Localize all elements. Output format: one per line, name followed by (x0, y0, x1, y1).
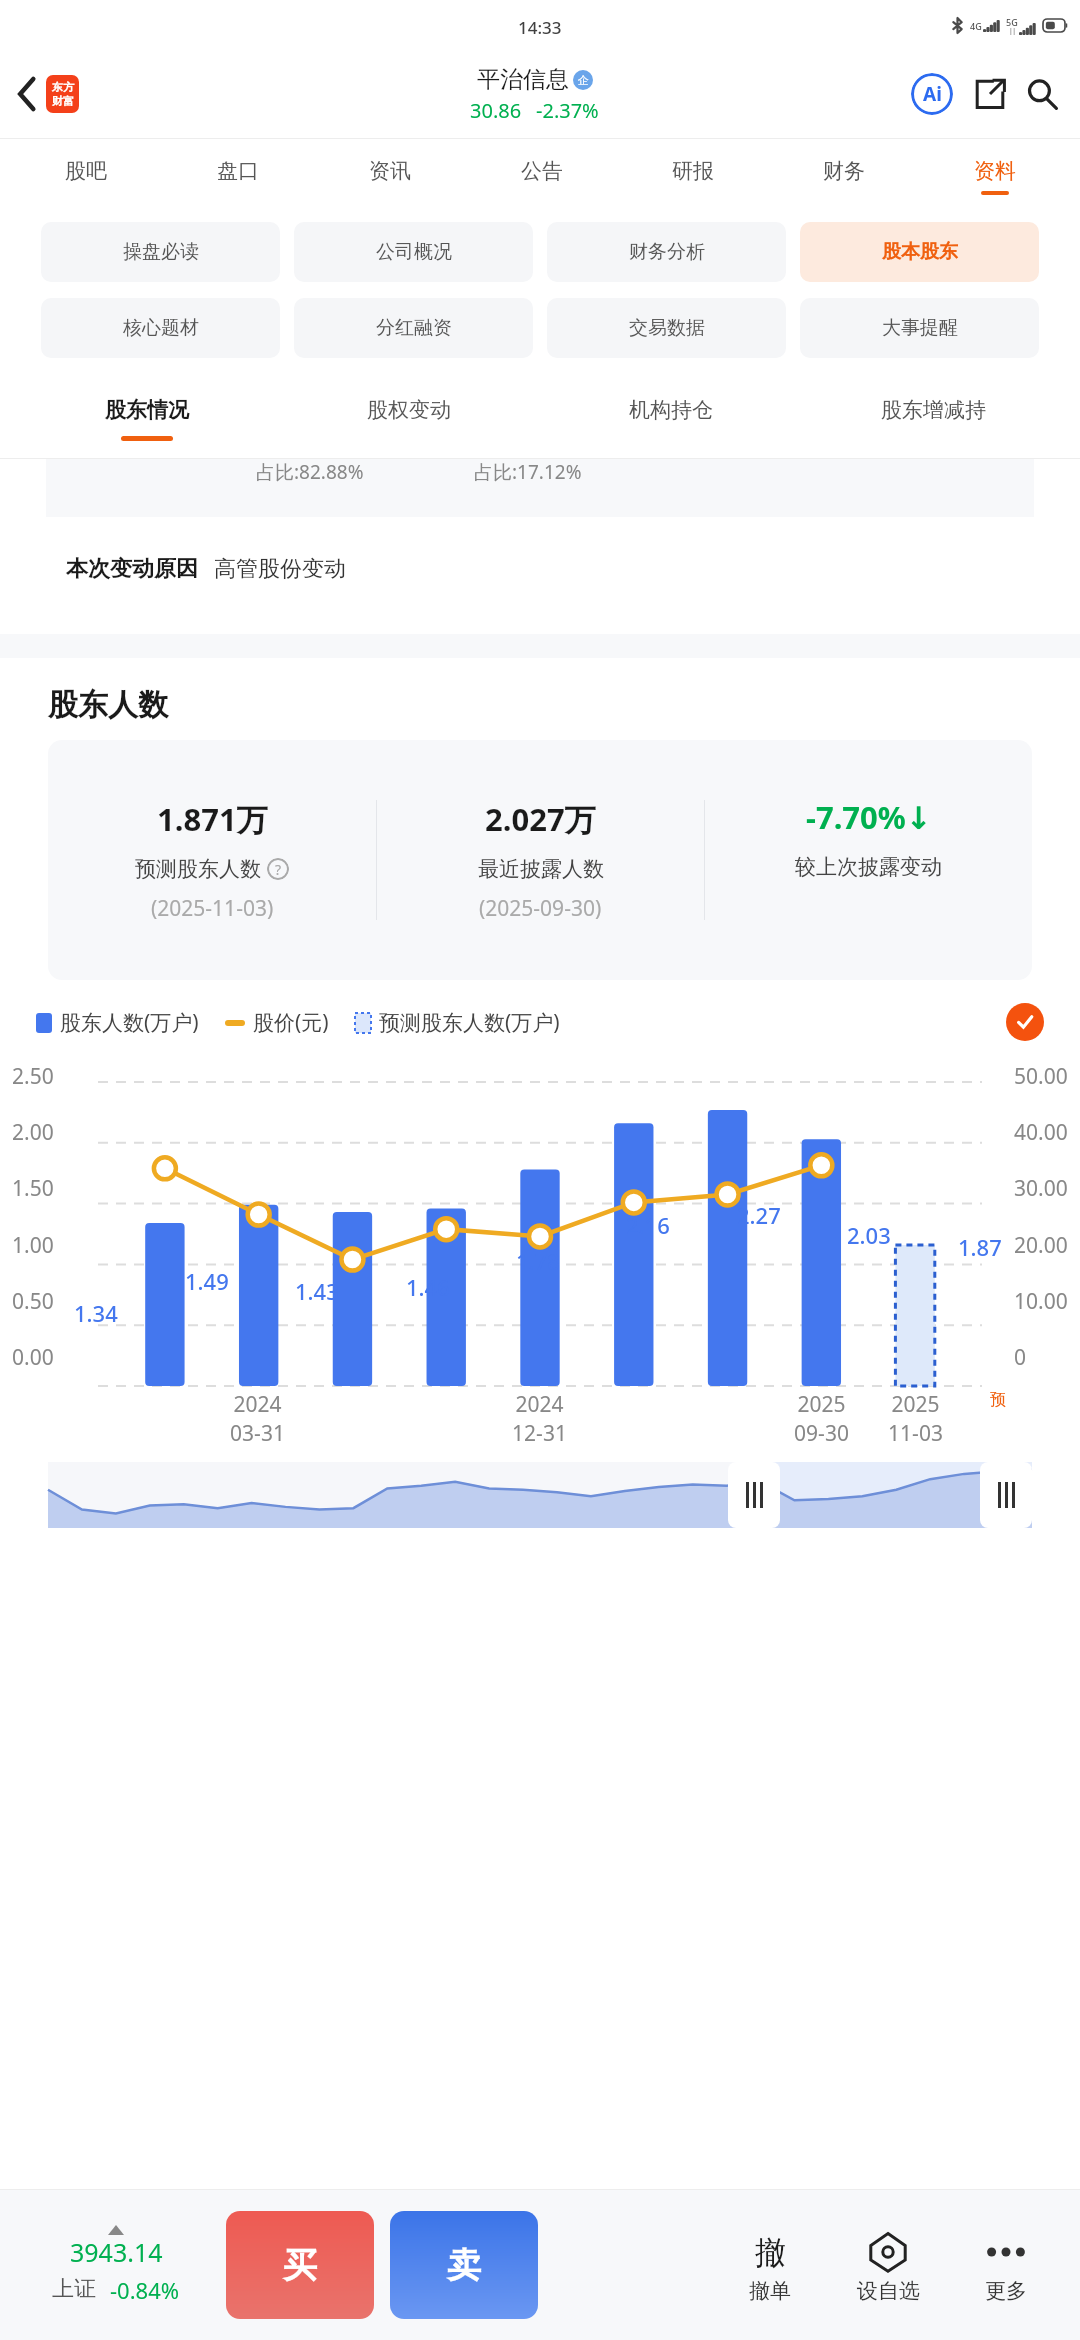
staticText: 财务 (823, 158, 865, 184)
staticText: 2.027万 (485, 798, 596, 840)
button[interactable]: 预测股东人数(万户) (355, 1008, 560, 1037)
staticText: 股权变动 (367, 397, 451, 423)
staticText: 上证 (52, 2275, 96, 2303)
button[interactable]: 盘口 (162, 139, 314, 214)
button[interactable]: 股吧 (10, 139, 162, 214)
button[interactable]: 撤 (722, 2226, 818, 2304)
staticText: 2.00 (12, 1118, 54, 1147)
staticText: 买 (283, 2244, 317, 2287)
staticText: 资讯 (369, 158, 411, 184)
staticText: 占比:17.12% (474, 459, 582, 485)
staticText: 核心题材 (123, 316, 199, 340)
staticText: 股东增减持 (881, 397, 986, 423)
staticText: 1.49 (185, 1266, 229, 1296)
staticText: 1.87 (958, 1232, 1002, 1262)
staticText: 0.00 (12, 1343, 54, 1372)
button[interactable]: 操盘必读 (41, 222, 280, 282)
staticText: 财富 (52, 94, 74, 108)
button[interactable]: 股权变动 (278, 366, 540, 458)
staticText: 0.50 (12, 1287, 54, 1316)
staticText: 2.16 (626, 1210, 670, 1240)
staticText: 4G (970, 20, 982, 32)
button[interactable]: Share (968, 72, 1012, 116)
staticText: -0.84% (110, 2275, 180, 2305)
staticText: ? (275, 860, 282, 879)
button[interactable]: Range handle (980, 1462, 1032, 1528)
staticText: 10.00 (1014, 1287, 1068, 1316)
staticText: 2.03 (847, 1220, 891, 1250)
staticText: 研报 (672, 158, 714, 184)
staticText: 操盘必读 (123, 240, 199, 264)
staticText: 企 (578, 73, 589, 87)
staticText: 20.00 (1014, 1231, 1068, 1260)
staticText: 1.78 (516, 1246, 560, 1276)
button[interactable]: 资料 (919, 139, 1070, 214)
staticText: (2025-11-03) (151, 894, 274, 923)
staticText: 3943.14 (70, 2235, 163, 2269)
staticText: 盘口 (217, 158, 259, 184)
button[interactable]: 大事提醒 (800, 298, 1039, 358)
staticText: 本次变动原因 (66, 555, 198, 583)
staticText: 财务分析 (629, 240, 705, 264)
button[interactable]: 3943.14 (26, 2225, 206, 2305)
button[interactable]: Search (1020, 72, 1064, 116)
button[interactable]: 机构持仓 (540, 366, 802, 458)
staticText: 资料 (974, 158, 1016, 184)
staticText: 2025 09-30 (794, 1390, 849, 1448)
staticText: 股东人数 (48, 686, 168, 724)
button[interactable]: 股东人数(万户) (36, 1008, 199, 1037)
staticText: 1.34 (74, 1298, 118, 1328)
staticText: 30.86 (470, 97, 522, 124)
staticText: 设自选 (857, 2278, 920, 2304)
button[interactable]: 核心题材 (41, 298, 280, 358)
staticText: 2025 11-03 (888, 1390, 943, 1448)
staticText: 东方 (52, 80, 74, 94)
staticText: 平治信息 (477, 65, 569, 94)
button[interactable]: 股东情况 (16, 366, 278, 458)
button[interactable]: Confirm (1006, 1003, 1044, 1041)
button[interactable]: 股东增减持 (802, 366, 1064, 458)
button[interactable]: 财务 (768, 139, 919, 214)
staticText: 较上次披露变动 (795, 854, 942, 880)
button[interactable]: 财务分析 (547, 222, 786, 282)
button[interactable]: 买 (226, 2211, 374, 2319)
button[interactable]: 公司概况 (294, 222, 533, 282)
button[interactable]: Back (10, 67, 87, 121)
button[interactable]: 更多 (958, 2226, 1054, 2304)
staticText: 机构持仓 (629, 397, 713, 423)
button[interactable]: 公告 (466, 139, 617, 214)
staticText: 股东情况 (105, 397, 189, 423)
button[interactable]: 设自选 (840, 2226, 936, 2304)
staticText: 0 (1014, 1343, 1027, 1372)
staticText: 预测股东人数(万户) (379, 1008, 560, 1037)
button[interactable]: 股价(元) (225, 1008, 329, 1037)
button[interactable]: 卖 (390, 2211, 538, 2319)
staticText: 2024 03-31 (230, 1390, 285, 1448)
staticText: 1.46 (406, 1272, 450, 1302)
staticText: 30.00 (1014, 1174, 1068, 1203)
staticText: 撤 (755, 2233, 786, 2272)
button[interactable]: 交易数据 (547, 298, 786, 358)
staticText: 股价(元) (253, 1008, 329, 1037)
staticText: 交易数据 (629, 316, 705, 340)
staticText: 分红融资 (376, 316, 452, 340)
staticText: -2.37% (536, 97, 599, 124)
staticText: 1.00 (12, 1231, 54, 1260)
staticText: 预测股东人数 (135, 856, 261, 882)
staticText: 占比:82.88% (256, 459, 364, 485)
staticText: 2024 12-31 (512, 1390, 567, 1448)
staticText: 5G (1006, 16, 1018, 28)
button[interactable]: 股本股东 (800, 222, 1039, 282)
staticText: 预 (990, 1390, 1006, 1410)
button[interactable]: 资讯 (314, 139, 466, 214)
button[interactable]: 研报 (617, 139, 768, 214)
staticText: 1.43 (295, 1276, 339, 1306)
button[interactable]: AI (906, 68, 958, 120)
button[interactable]: Range handle (728, 1462, 780, 1528)
button[interactable]: 1.871万 (48, 740, 1032, 980)
staticText: 卖 (447, 2244, 481, 2287)
button[interactable]: 分红融资 (294, 298, 533, 358)
staticText: 40.00 (1014, 1118, 1068, 1147)
staticText: 股吧 (65, 158, 107, 184)
staticText: Ai (923, 81, 942, 107)
